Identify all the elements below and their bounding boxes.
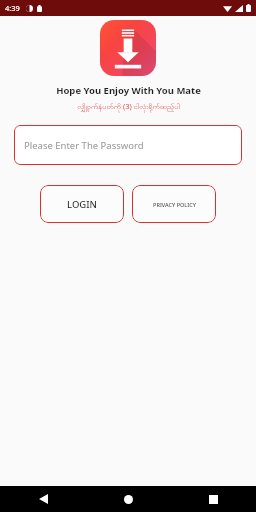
button[interactable]: Recent apps	[171, 486, 256, 512]
button[interactable]: LOGIN	[40, 185, 124, 223]
staticText: 4:39	[5, 3, 20, 13]
other: App icon	[100, 20, 156, 76]
button[interactable]: Back	[0, 486, 86, 512]
staticText: PRIVACY POLICY	[153, 201, 196, 208]
staticText: လျှို့ဝှက်နံပတ်ကို (3) ငါလုံးရိုက်ထည့်ပါ	[77, 101, 180, 113]
staticText: Please Enter The Password	[24, 139, 144, 152]
staticText: LOGIN	[67, 198, 97, 211]
button[interactable]: PRIVACY POLICY	[132, 185, 216, 223]
staticText: Hope You Enjoy With You Mate	[56, 84, 201, 97]
button[interactable]: Please Enter The Password	[14, 125, 242, 165]
button[interactable]: Home	[86, 486, 171, 512]
